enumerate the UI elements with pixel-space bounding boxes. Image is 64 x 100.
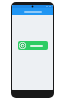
button[interactable]: Open chat [18,41,48,50]
other: Open chat [19,42,26,49]
button[interactable] [12,8,53,15]
